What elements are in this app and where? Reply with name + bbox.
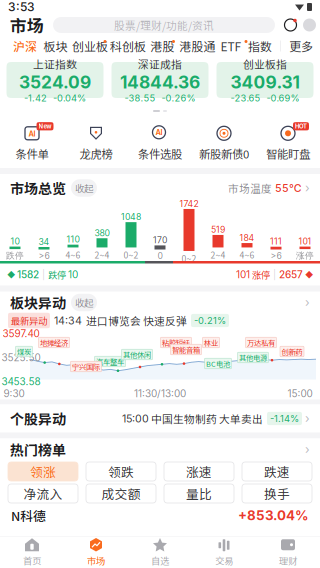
- staticText: 14844.36: [120, 72, 200, 93]
- staticText: 0: [157, 250, 162, 261]
- staticText: 深证成指: [138, 56, 182, 71]
- staticText: 跌停: [6, 250, 24, 261]
- staticText: ◆: [7, 270, 17, 279]
- staticText: 成交额: [101, 484, 140, 503]
- button[interactable]: 市场: [64, 537, 128, 567]
- staticText: +853.04%: [238, 507, 309, 523]
- staticText: 条件单: [15, 145, 48, 162]
- staticText: |: [39, 269, 48, 280]
- staticText: ETF: [220, 37, 241, 55]
- button[interactable]: 板块: [40, 36, 71, 56]
- staticText: 港股: [150, 37, 174, 55]
- staticText: -1.14%: [270, 413, 299, 424]
- staticText: 3524.09: [19, 72, 91, 93]
- staticText: ›: [302, 411, 310, 426]
- staticText: 3597.40: [2, 327, 39, 340]
- staticText: 3453.58: [1, 375, 40, 388]
- staticText: -0.21%: [194, 315, 226, 326]
- staticText: 收起: [75, 296, 93, 309]
- button[interactable]: 新股新债0: [192, 126, 256, 160]
- staticText: ›: [305, 295, 310, 310]
- button[interactable]: 领跌: [86, 462, 156, 481]
- staticText: 涨停: [296, 250, 314, 261]
- staticText: N科德: [11, 506, 46, 525]
- staticText: 涨速: [186, 462, 212, 481]
- button[interactable]: 自选: [128, 537, 192, 567]
- button[interactable]: 龙虎榜: [64, 126, 128, 160]
- button[interactable]: AI: [128, 126, 192, 160]
- button[interactable]: 上证指数: [6, 62, 103, 98]
- staticText: 沪深: [13, 37, 37, 55]
- button[interactable]: 跌速: [242, 462, 312, 481]
- staticText: 上证指数: [33, 56, 77, 71]
- button[interactable]: 港股通: [178, 36, 217, 56]
- button[interactable]: 我的: [298, 18, 316, 31]
- staticText: BC电池: [206, 358, 230, 369]
- staticText: 10: [68, 268, 78, 281]
- button[interactable]: 量比: [164, 484, 234, 503]
- staticText: |: [270, 269, 279, 280]
- button[interactable]: 港股: [147, 36, 178, 56]
- staticText: 15:00: [287, 387, 312, 400]
- staticText: 个股异动: [10, 408, 66, 429]
- button[interactable]: 更多板块异动: [305, 295, 310, 310]
- staticText: 领跌: [108, 462, 134, 481]
- staticText: 34: [38, 236, 49, 247]
- button[interactable]: 指数: [245, 36, 275, 56]
- staticText: 1742: [179, 198, 198, 209]
- button[interactable]: 首页: [0, 537, 64, 567]
- staticText: 换手: [264, 484, 290, 503]
- staticText: 板块: [43, 37, 67, 55]
- button[interactable]: 创业板指: [216, 62, 313, 98]
- button[interactable]: 深证成指: [111, 62, 208, 98]
- button[interactable]: 消息: [283, 17, 298, 32]
- staticText: 煤炭: [17, 346, 31, 357]
- button[interactable]: 成交额: [86, 484, 156, 503]
- staticText: -1.42 -0.04%: [24, 93, 86, 104]
- staticText: 龙虎榜: [79, 145, 112, 162]
- staticText: 条件选股: [138, 145, 182, 162]
- button[interactable]: 创业板: [71, 36, 109, 56]
- button[interactable]: ETF: [217, 36, 245, 56]
- staticText: 380: [94, 228, 109, 238]
- staticText: 地摊经济: [40, 337, 68, 348]
- staticText: 净流入: [23, 484, 62, 503]
- staticText: 9:30: [3, 387, 24, 400]
- button[interactable]: 科创板: [109, 36, 147, 56]
- staticText: -38.55 -0.26%: [124, 93, 195, 104]
- staticText: 10: [10, 236, 19, 247]
- staticText: 林业: [204, 337, 218, 348]
- staticText: 最新异动: [11, 314, 47, 327]
- staticText: 111: [270, 236, 282, 247]
- staticText: >6: [270, 250, 281, 261]
- button[interactable]: 领涨: [8, 462, 78, 481]
- staticText: 101: [298, 236, 311, 247]
- button[interactable]: 收起: [71, 294, 97, 311]
- button[interactable]: 市场温度: [228, 180, 310, 196]
- staticText: 粘胶短纤: [162, 337, 190, 348]
- staticText: 汽车整车: [96, 356, 124, 367]
- button[interactable]: 净流入: [8, 484, 78, 503]
- button[interactable]: 更多: [286, 36, 316, 56]
- staticText: 涨停: [250, 268, 270, 281]
- button[interactable]: 理财: [256, 537, 320, 567]
- button[interactable]: 更多榜单: [305, 442, 310, 457]
- button[interactable]: 收起: [71, 179, 97, 197]
- staticText: 跌停: [48, 268, 68, 281]
- button[interactable]: HOT: [256, 126, 320, 160]
- staticText: 更多: [289, 37, 313, 55]
- staticText: 宁兴国际: [72, 361, 100, 372]
- button[interactable]: 交易: [192, 537, 256, 567]
- button[interactable]: 沪深: [10, 36, 40, 56]
- button[interactable]: 涨速: [164, 462, 234, 481]
- button[interactable]: AI: [0, 126, 64, 160]
- staticText: 3409.31: [230, 72, 299, 93]
- staticText: 收起: [75, 181, 93, 195]
- staticText: 进口博览会 快速反弹: [86, 313, 187, 328]
- button[interactable]: 换手: [242, 484, 312, 503]
- button[interactable]: 个股异动: [0, 404, 320, 432]
- staticText: 市场总览: [10, 178, 66, 198]
- staticText: 理财: [279, 554, 297, 567]
- staticText: 其他休闲: [123, 349, 151, 360]
- staticText: 1048: [121, 212, 141, 222]
